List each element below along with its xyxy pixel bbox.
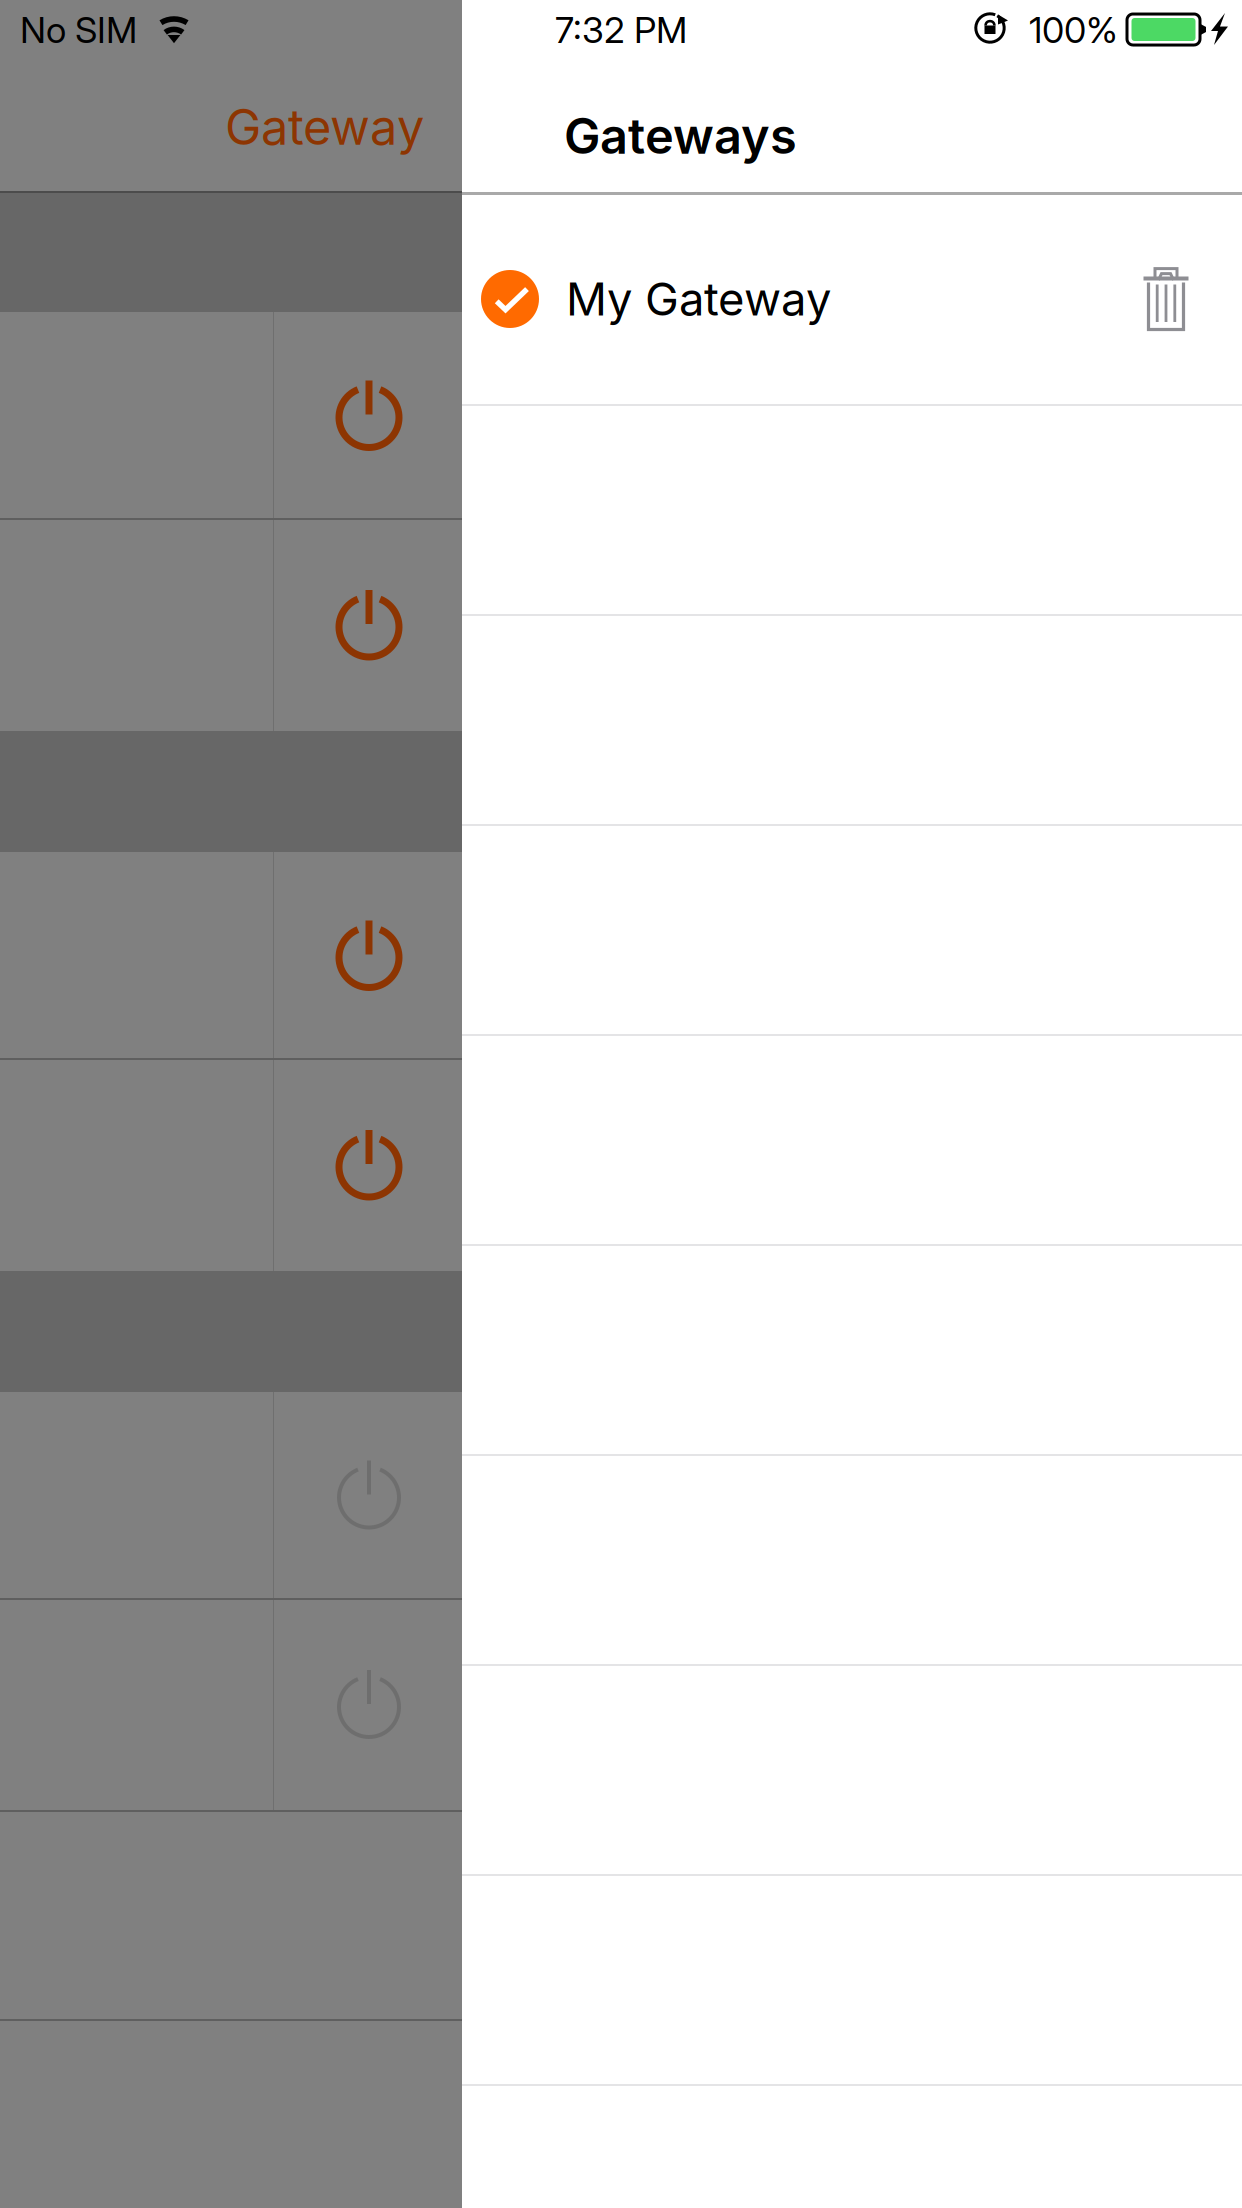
staticText: Gateways: [564, 107, 797, 165]
button[interactable]: My Gateway: [462, 194, 1242, 404]
staticText: 7:32 PM: [555, 8, 687, 52]
staticText: No SIM: [20, 8, 137, 52]
button[interactable]: Delete My Gateway: [1100, 194, 1232, 404]
staticText: 100%: [1029, 8, 1118, 52]
staticText: Gateway: [225, 98, 424, 156]
staticText: My Gateway: [566, 272, 831, 326]
button[interactable]: Close Gateways: [0, 0, 462, 2208]
